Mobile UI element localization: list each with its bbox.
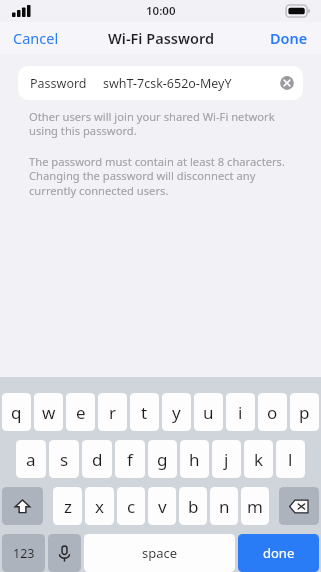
staticText: m [247,495,263,518]
staticText: l [288,448,293,471]
button[interactable]: Done [257,23,321,53]
staticText: space [142,544,178,562]
button[interactable]: x [85,487,114,525]
button[interactable]: done [238,534,319,572]
staticText: j [224,448,229,471]
staticText: h [189,448,200,471]
staticText: p [299,401,310,424]
button[interactable]: Shift [2,487,43,525]
button[interactable]: t [130,393,159,431]
staticText: The password must contain at least 8 cha… [29,154,285,199]
staticText: q [11,401,22,424]
button[interactable]: z [53,487,82,525]
button[interactable]: p [290,393,319,431]
staticText: f [127,448,133,471]
button[interactable]: f [115,440,145,478]
staticText: Wi-Fi Password [108,28,214,48]
staticText: i [238,401,243,424]
button[interactable]: a [16,440,46,478]
staticText: done [263,544,295,562]
button[interactable]: u [194,393,223,431]
button[interactable]: Dictation [48,534,81,572]
staticText: a [26,448,36,471]
staticText: z [64,495,72,518]
staticText: k [254,448,264,471]
button[interactable]: g [148,440,177,478]
button[interactable]: b [179,487,207,525]
staticText: d [92,448,103,471]
button[interactable]: n [210,487,238,525]
staticText: b [188,495,199,518]
button[interactable]: l [276,440,305,478]
button[interactable]: m [241,487,269,525]
button[interactable]: i [226,393,255,431]
button[interactable]: 123 [2,534,45,572]
button[interactable]: space [84,534,235,572]
staticText: swhT-7csk-652o-MeyY [103,75,232,92]
staticText: g [157,448,168,471]
staticText: s [60,448,69,471]
button[interactable]: Password [18,66,303,100]
staticText: w [42,401,56,424]
staticText: v [158,495,167,518]
button[interactable]: c [117,487,145,525]
button[interactable]: k [244,440,273,478]
staticText: t [141,401,148,424]
staticText: 123 [13,545,35,562]
button[interactable]: y [162,393,191,431]
staticText: r [109,401,117,424]
button[interactable]: w [34,393,63,431]
button[interactable]: j [212,440,241,478]
staticText: 10:00 [146,3,176,19]
button[interactable]: Backspace [279,487,319,525]
button[interactable]: o [258,393,287,431]
button[interactable]: d [82,440,112,478]
button[interactable]: r [98,393,127,431]
staticText: y [172,401,181,424]
button[interactable]: Clear text [279,75,295,91]
button[interactable]: s [49,440,79,478]
staticText: o [267,401,278,424]
button[interactable]: Cancel [0,23,72,53]
staticText: Password [30,75,87,92]
staticText: c [127,495,136,518]
staticText: u [203,401,214,424]
staticText: e [76,401,86,424]
button[interactable]: q [2,393,31,431]
staticText: Other users will join your shared Wi-Fi … [29,109,275,139]
button[interactable]: h [180,440,209,478]
button[interactable]: v [148,487,176,525]
staticText: Cancel [13,28,59,48]
button[interactable]: e [66,393,95,431]
staticText: x [95,495,104,518]
staticText: Done [270,28,308,48]
staticText: n [219,495,230,518]
